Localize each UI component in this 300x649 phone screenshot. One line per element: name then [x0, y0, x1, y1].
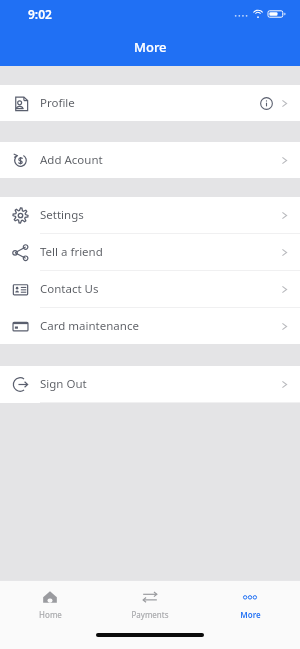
button[interactable]: Add Acount — [0, 142, 300, 178]
button[interactable]: Card maintenance — [0, 308, 300, 344]
staticText: Add Acount — [40, 152, 103, 168]
staticText: Contact Us — [40, 281, 99, 297]
button[interactable]: Contact Us — [0, 271, 300, 308]
staticText: 9:02 — [28, 6, 52, 22]
button[interactable]: Settings — [0, 197, 300, 234]
staticText: More — [240, 609, 261, 620]
button[interactable]: Home — [0, 581, 100, 627]
staticText: Tell a friend — [40, 244, 103, 260]
button[interactable]: More — [200, 581, 300, 627]
staticText: Payments — [131, 609, 169, 620]
staticText: More — [134, 38, 167, 56]
staticText: Home — [39, 609, 62, 620]
button[interactable]: Sign Out — [0, 366, 300, 403]
staticText: Settings — [40, 207, 84, 223]
button[interactable]: Payments — [100, 581, 200, 627]
staticText: Card maintenance — [40, 318, 139, 334]
button[interactable]: Profile — [0, 85, 300, 121]
staticText: Profile — [40, 95, 75, 111]
staticText: Sign Out — [40, 376, 87, 392]
button[interactable]: Tell a friend — [0, 234, 300, 271]
